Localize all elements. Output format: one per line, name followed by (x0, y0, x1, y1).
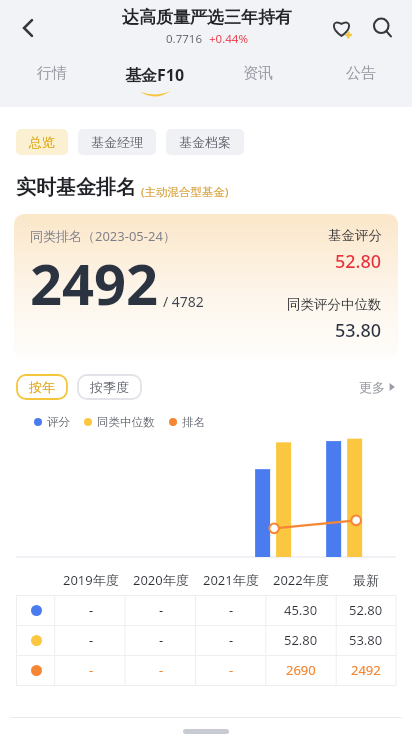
staticText: 按季度 (90, 379, 129, 395)
staticText: 最新 (353, 572, 379, 588)
staticText: 按年 (29, 379, 55, 395)
staticText: - (89, 631, 94, 649)
staticText: - (89, 661, 94, 679)
button[interactable]: 同类排名（2023-05-24） (14, 214, 398, 358)
staticText: 同类中位数 (97, 415, 155, 429)
staticText: - (229, 631, 234, 649)
staticText: 2492 (351, 661, 381, 679)
staticText: - (159, 601, 164, 619)
staticText: 行情 (37, 64, 67, 83)
staticText: 基金评分 (328, 227, 382, 244)
staticText: 2021年度 (203, 571, 259, 589)
staticText: 基金档案 (179, 134, 231, 150)
staticText: / 4782 (163, 292, 204, 311)
staticText: 基金F10 (125, 64, 185, 86)
button[interactable]: 资讯 (206, 55, 309, 107)
button[interactable]: Search (362, 7, 404, 49)
staticText: 2020年度 (133, 571, 189, 589)
staticText: 同类评分中位数 (287, 296, 382, 313)
staticText: - (89, 601, 94, 619)
staticText: 2022年度 (273, 571, 329, 589)
button[interactable]: 基金经理 (78, 129, 156, 155)
staticText: 52.80 (349, 601, 383, 619)
staticText: - (229, 661, 234, 679)
button[interactable]: 按季度 (77, 374, 142, 400)
staticText: 52.80 (335, 249, 382, 274)
staticText: (主动混合型基金) (141, 184, 229, 200)
staticText: 0.7716 (166, 31, 202, 47)
staticText: - (159, 661, 164, 679)
staticText: 实时基金排名 (16, 175, 136, 200)
staticText: 公告 (346, 64, 376, 83)
staticText: 资讯 (243, 64, 273, 83)
staticText: - (229, 601, 234, 619)
button[interactable]: 公告 (309, 55, 412, 107)
staticText: 同类排名（2023-05-24） (30, 227, 176, 245)
staticText: 2690 (286, 661, 316, 679)
staticText: 52.80 (284, 631, 318, 649)
staticText: 达高质量严选三年持有 (122, 7, 292, 28)
staticText: 53.80 (349, 631, 383, 649)
button[interactable]: 总览 (16, 129, 68, 155)
staticText: 排名 (182, 415, 205, 429)
staticText: 更多 (359, 379, 385, 395)
button[interactable]: 更多 (359, 379, 396, 395)
staticText: 2492 (30, 245, 159, 321)
button[interactable]: Back (6, 6, 50, 50)
staticText: 45.30 (284, 601, 318, 619)
staticText: 2019年度 (63, 571, 119, 589)
staticText: 基金经理 (91, 134, 143, 150)
staticText: 总览 (29, 134, 55, 150)
staticText: 53.80 (335, 318, 382, 343)
staticText: +0.44% (209, 31, 248, 47)
button[interactable]: 按年 (16, 374, 68, 400)
staticText: 评分 (47, 415, 70, 429)
button[interactable]: 基金档案 (166, 129, 244, 155)
button[interactable]: 基金F10 (103, 55, 206, 107)
button[interactable]: 行情 (0, 55, 103, 107)
button[interactable]: Add to favorites (320, 7, 362, 49)
staticText: - (159, 631, 164, 649)
